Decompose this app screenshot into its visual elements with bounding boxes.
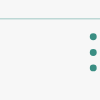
button[interactable]: Page 1 of 3 xyxy=(83,29,99,45)
button[interactable]: Page 2 of 3 xyxy=(83,45,99,61)
button[interactable]: Page 3 of 3 xyxy=(83,61,99,77)
